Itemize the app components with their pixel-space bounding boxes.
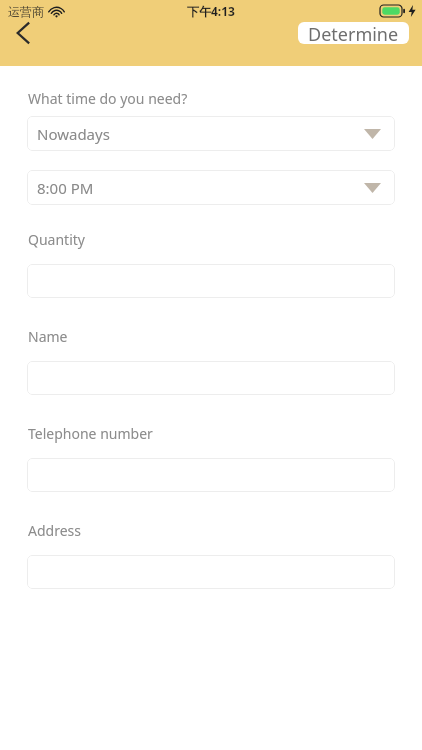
button[interactable]: Determine [298,22,409,44]
staticText: Telephone number [28,424,153,443]
button[interactable]: 8:00 PM [27,170,395,205]
staticText: 运营商 [8,4,44,19]
button[interactable]: Nowadays [27,116,395,151]
button[interactable] [27,555,395,589]
button[interactable] [27,458,395,492]
staticText: 下午4:13 [187,3,235,19]
staticText: Nowadays [37,124,110,144]
staticText: Name [28,327,68,346]
staticText: What time do you need? [28,89,188,108]
button[interactable]: Back [0,22,46,44]
staticText: 8:00 PM [37,178,94,198]
staticText: Address [28,521,81,540]
staticText: Quantity [28,230,85,249]
staticText: Determine [308,22,399,44]
button[interactable] [27,361,395,395]
button[interactable] [27,264,395,298]
